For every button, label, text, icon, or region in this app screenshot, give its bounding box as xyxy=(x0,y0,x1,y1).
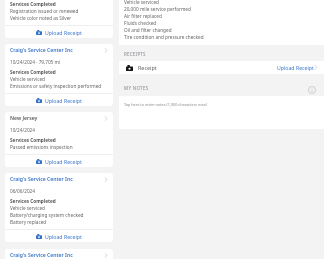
staticText: Battery/charging system checked xyxy=(10,212,84,218)
staticText: Upload Receipt xyxy=(45,97,82,104)
staticText: Vehicle serviced 20,000 mile service per… xyxy=(124,0,204,41)
staticText: 06/06/2024 xyxy=(10,188,35,194)
staticText: MY NOTES xyxy=(124,85,149,91)
staticText: Services Completed xyxy=(10,69,56,75)
button[interactable]: Upload Receipt xyxy=(5,94,113,106)
button[interactable]: Services Completed xyxy=(5,0,113,38)
staticText: Vehicle serviced xyxy=(10,205,45,211)
staticText: 10/24/2024 · 79,705 mi xyxy=(10,59,61,65)
staticText: Registration issued or renewed xyxy=(10,8,79,14)
button[interactable]: Craig's Service Center Inc xyxy=(5,249,113,259)
staticText: Vehicle color noted as Silver xyxy=(10,15,72,21)
button[interactable]: Craig's Service Center Inc xyxy=(5,44,113,106)
button[interactable]: Upload Receipt xyxy=(5,26,113,38)
staticText: Craig's Service Center Inc xyxy=(10,176,105,183)
staticText: Services Completed xyxy=(10,198,56,204)
staticText: Battery replaced xyxy=(10,219,47,225)
staticText: Upload Receipt xyxy=(277,64,314,71)
button[interactable]: Upload Receipt xyxy=(5,230,113,242)
button[interactable]: Craig's Service Center Inc xyxy=(5,173,113,242)
staticText: Services Completed xyxy=(10,1,56,7)
button[interactable]: Receipt xyxy=(119,61,324,74)
staticText: Upload Receipt xyxy=(45,233,82,240)
staticText: 10/24/2024 xyxy=(10,127,35,133)
staticText: Receipt xyxy=(138,64,277,71)
staticText: Emissions or safety inspection performed xyxy=(10,83,102,89)
staticText: New Jersey xyxy=(10,115,105,122)
button[interactable]: Notes info xyxy=(308,86,316,94)
staticText: Craig's Service Center Inc xyxy=(10,47,105,54)
staticText: Tap here to enter notes (1,000 character… xyxy=(124,102,207,107)
button[interactable]: New Jersey xyxy=(5,112,113,167)
staticText: Vehicle serviced xyxy=(10,76,45,82)
staticText: Passed emissions inspection xyxy=(10,144,73,150)
staticText: Craig's Service Center Inc xyxy=(10,252,105,259)
button[interactable]: Upload Receipt xyxy=(5,155,113,167)
staticText: RECEIPTS xyxy=(124,51,146,57)
staticText: Upload Receipt xyxy=(45,158,82,165)
button[interactable]: Tap here to enter notes (1,000 character… xyxy=(119,96,324,129)
staticText: Upload Receipt xyxy=(45,29,82,36)
staticText: Services Completed xyxy=(10,137,56,143)
